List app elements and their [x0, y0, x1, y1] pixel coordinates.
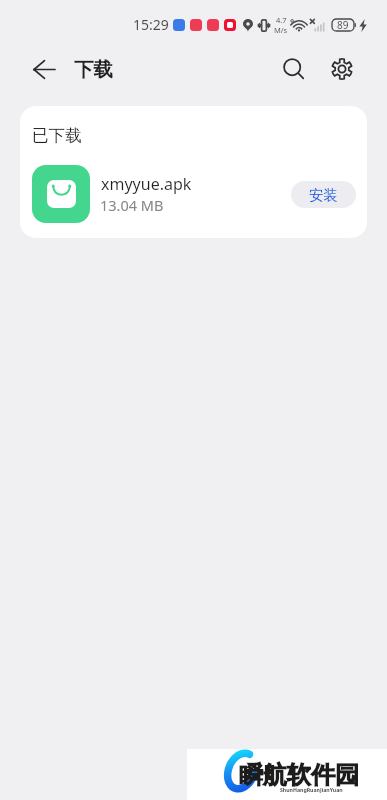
staticText: M/s — [274, 25, 288, 35]
staticText: 安装 — [309, 186, 338, 204]
staticText: 15:29 — [133, 15, 169, 34]
staticText: 13.04 MB — [100, 195, 164, 215]
button[interactable]: 安装 — [291, 181, 356, 208]
button[interactable]: Search — [278, 53, 310, 85]
staticText: ShunHangRuanJianYuan — [280, 786, 343, 793]
staticText: 已下载 — [32, 125, 82, 146]
staticText: xmyyue.apk — [101, 173, 192, 195]
staticText: 瞬航软件园 — [239, 760, 359, 790]
button[interactable]: xmyyue.apk — [20, 163, 367, 225]
button[interactable]: Settings — [326, 53, 358, 85]
staticText: 89 — [337, 18, 349, 32]
button[interactable]: Back — [28, 53, 60, 85]
staticText: 4.7 — [276, 15, 287, 25]
staticText: 下载 — [74, 57, 113, 82]
